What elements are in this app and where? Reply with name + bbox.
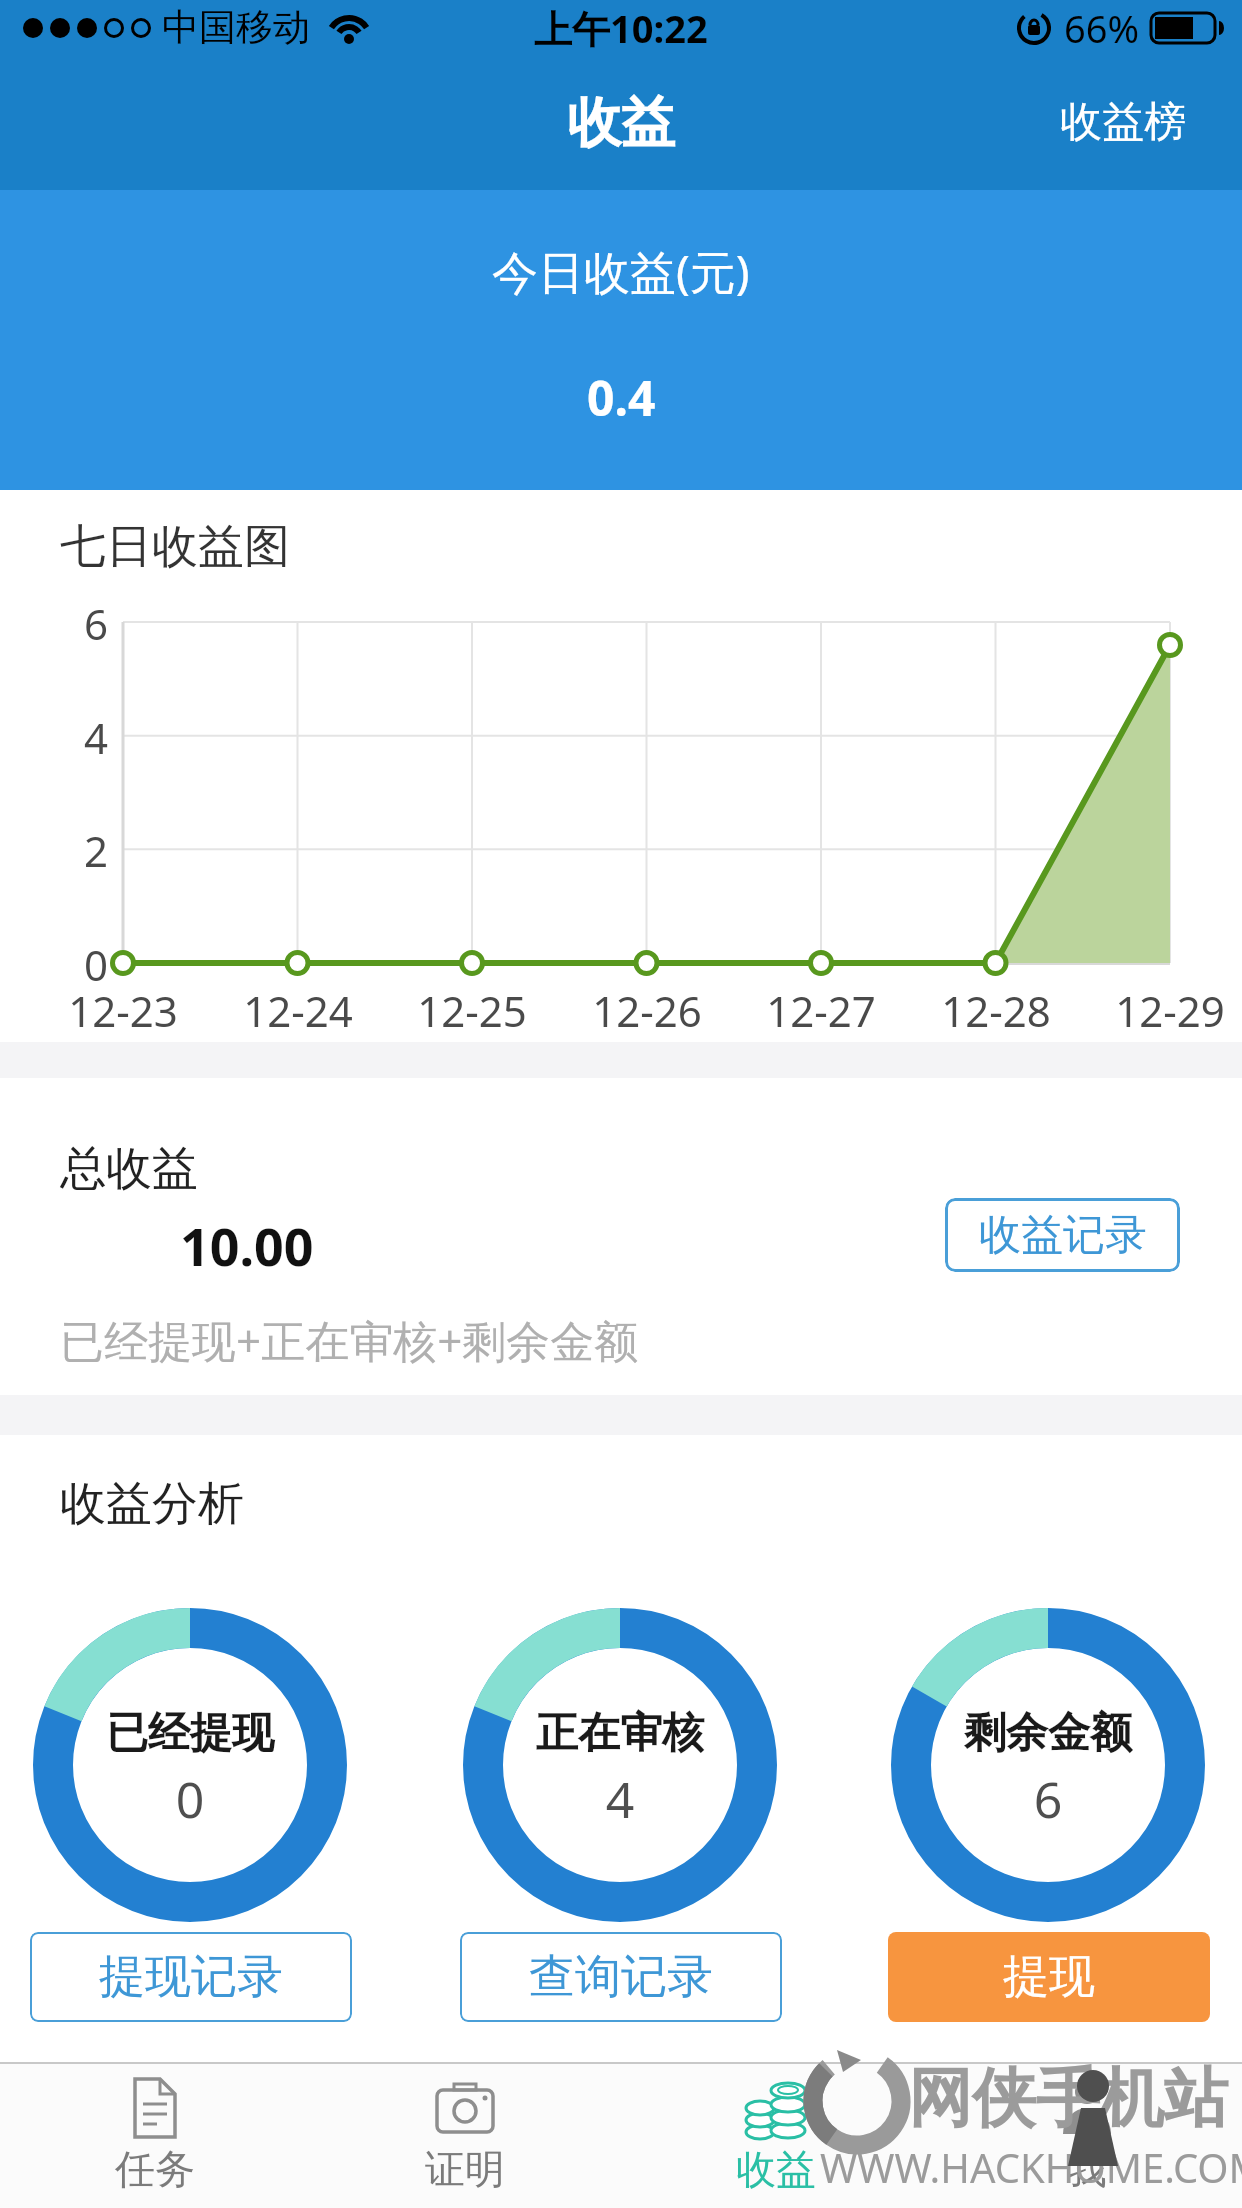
button[interactable]: 提现记录 — [30, 1932, 352, 2022]
staticText: 查询记录 — [529, 1948, 713, 2006]
staticText: 网侠手机站 — [908, 2058, 1228, 2139]
staticText: 12-23 — [66, 982, 180, 1039]
staticText: 今日收益(元) — [492, 240, 750, 303]
staticText: 0 — [40, 1765, 340, 1833]
staticText: 6 — [84, 595, 109, 652]
staticText: 已经提现+正在审核+剩余金额 — [60, 1310, 639, 1370]
button[interactable]: 任务 — [0, 2064, 310, 2208]
staticText: WWW.HACKHOME.COM — [820, 2140, 1242, 2194]
staticText: 任务 — [115, 2144, 195, 2194]
staticText: 12-25 — [415, 982, 529, 1039]
staticText: 12-24 — [241, 982, 355, 1039]
staticText: 12-29 — [1113, 982, 1227, 1039]
staticText: 收益 — [567, 89, 675, 157]
staticText: 12-27 — [764, 982, 878, 1039]
button[interactable]: 提现 — [888, 1932, 1210, 2022]
staticText: 上午10:22 — [534, 2, 708, 54]
staticText: 10.00 — [180, 1210, 314, 1281]
staticText: 2 — [84, 822, 109, 879]
staticText: 剩余金额 — [898, 1707, 1198, 1760]
button[interactable]: 证明 — [310, 2064, 620, 2208]
staticText: 正在审核 — [470, 1707, 770, 1760]
button[interactable]: 收益记录 — [945, 1198, 1180, 1272]
staticText: 中国移动 — [162, 4, 310, 51]
staticText: 我 — [1067, 2144, 1107, 2194]
staticText: 收益榜 — [1060, 96, 1186, 149]
button[interactable]: 收益榜 — [1054, 90, 1192, 155]
staticText: 证明 — [425, 2144, 505, 2194]
button[interactable]: 今日收益(元) — [0, 190, 1242, 490]
staticText: 提现 — [1003, 1948, 1095, 2006]
staticText: 4 — [84, 709, 109, 766]
staticText: 提现记录 — [99, 1948, 283, 2006]
staticText: 0 — [84, 936, 109, 993]
staticText: 6 — [898, 1765, 1198, 1833]
staticText: 七日收益图 — [60, 518, 290, 576]
staticText: 12-26 — [590, 982, 704, 1039]
staticText: 总收益 — [60, 1140, 198, 1198]
staticText: 0.4 — [587, 365, 656, 430]
staticText: 收益 — [736, 2144, 816, 2194]
staticText: 收益记录 — [979, 1209, 1147, 1262]
button[interactable]: 收益 — [620, 2064, 931, 2208]
staticText: 66% — [1064, 2, 1140, 54]
staticText: 收益分析 — [60, 1475, 244, 1533]
staticText: 12-28 — [939, 982, 1053, 1039]
button[interactable]: 我 — [931, 2064, 1242, 2208]
button[interactable]: 查询记录 — [460, 1932, 782, 2022]
staticText: 4 — [470, 1765, 770, 1833]
staticText: 已经提现 — [40, 1707, 340, 1760]
